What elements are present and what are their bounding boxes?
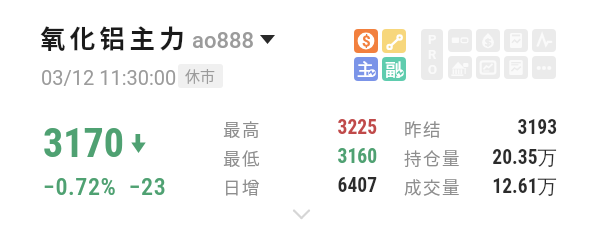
staticText: 休市 bbox=[185, 65, 216, 87]
staticText: 20.35万 bbox=[492, 145, 557, 170]
button[interactable]: Tool 6 bbox=[476, 56, 500, 79]
staticText: 氧化铝主力 bbox=[40, 18, 190, 55]
staticText: 持仓量 bbox=[404, 145, 461, 170]
staticText: 3225 bbox=[337, 116, 377, 139]
staticText: 03/12 11:30:00 bbox=[41, 66, 177, 89]
staticText: 12.61万 bbox=[492, 174, 557, 199]
staticText: R bbox=[428, 47, 437, 62]
button[interactable]: Tool 5 bbox=[448, 56, 472, 79]
button[interactable]: Tool 2 bbox=[476, 29, 500, 52]
button[interactable]: Tool 3 bbox=[504, 29, 528, 52]
button[interactable]: Expand more bbox=[292, 208, 311, 220]
button[interactable]: 主 bbox=[354, 57, 378, 81]
staticText: 日增 bbox=[223, 174, 261, 199]
button[interactable]: 休市 bbox=[178, 64, 223, 88]
button[interactable]: Tool 4 bbox=[532, 29, 556, 52]
button[interactable]: Trend line bbox=[382, 29, 406, 53]
staticText: 昨结 bbox=[404, 116, 442, 141]
staticText: O bbox=[428, 62, 437, 77]
staticText: $ bbox=[362, 32, 371, 50]
staticText: 3193 bbox=[517, 116, 557, 139]
staticText: 副 bbox=[385, 57, 402, 81]
staticText: 3160 bbox=[337, 145, 377, 168]
staticText: 3170 bbox=[43, 120, 124, 167]
staticText: −0.72% −23 bbox=[43, 173, 167, 201]
staticText: P bbox=[428, 32, 437, 47]
staticText: 6407 bbox=[337, 174, 377, 197]
staticText: 最高 bbox=[223, 116, 261, 141]
button[interactable]: Switch contract bbox=[260, 35, 275, 44]
button[interactable]: PRO bbox=[421, 29, 443, 80]
button[interactable]: 副 bbox=[382, 57, 406, 81]
button[interactable]: Tool 1 bbox=[448, 29, 472, 52]
button[interactable]: Quotes bbox=[354, 29, 378, 53]
button[interactable]: Tool 7 bbox=[504, 56, 528, 79]
staticText: 成交量 bbox=[404, 174, 461, 199]
staticText: ao888 bbox=[192, 28, 254, 54]
button[interactable]: Tool 8 bbox=[532, 56, 556, 79]
staticText: 最低 bbox=[223, 145, 261, 170]
staticText: 主 bbox=[357, 57, 374, 81]
